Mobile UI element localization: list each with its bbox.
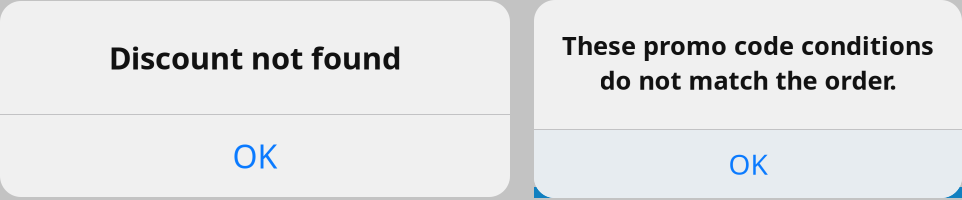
staticText: These promo code conditions [562, 28, 934, 62]
button[interactable]: OK [534, 130, 962, 198]
staticText: OK [728, 145, 767, 183]
staticText: do not match the order. [599, 63, 896, 97]
staticText: OK [232, 135, 277, 177]
button[interactable]: OK [0, 115, 510, 197]
staticText: Discount not found [109, 37, 401, 78]
